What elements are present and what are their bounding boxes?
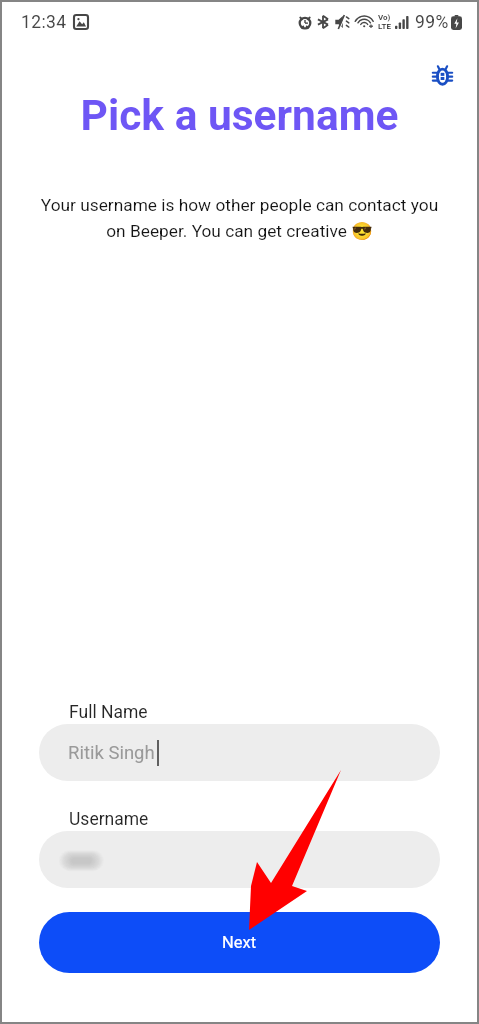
staticText: Next <box>222 933 257 952</box>
button[interactable]: Next <box>39 912 440 973</box>
staticText: Ritik Singh <box>68 742 155 764</box>
staticText: Username <box>69 809 149 830</box>
staticText: Your username is how other people can co… <box>22 195 457 241</box>
staticText: 12:34 <box>21 12 67 33</box>
staticText: Full Name <box>69 702 148 723</box>
button[interactable] <box>39 831 440 888</box>
staticText: Vo) <box>378 13 391 22</box>
staticText: LTE <box>378 22 391 31</box>
staticText: 99% <box>415 12 449 33</box>
button[interactable]: Ritik Singh <box>39 724 440 781</box>
staticText: Pick a username <box>2 91 477 141</box>
button[interactable]: Debug <box>428 61 456 89</box>
